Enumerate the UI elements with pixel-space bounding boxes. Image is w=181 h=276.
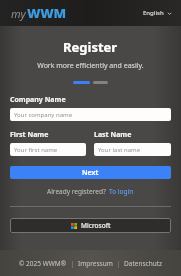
staticText: Your company name — [14, 111, 73, 119]
staticText: my — [11, 6, 26, 21]
staticText: To login — [109, 187, 134, 196]
staticText: Your first name — [14, 146, 58, 154]
button[interactable]: English — [143, 9, 172, 17]
button[interactable]: Impressum — [78, 259, 113, 268]
staticText: Already registered? — [47, 187, 106, 196]
staticText: WWM — [27, 4, 66, 22]
staticText: Company Name — [10, 95, 66, 105]
button[interactable]: Microsoft — [10, 218, 171, 233]
staticText: Register — [63, 38, 118, 56]
button[interactable]: Already registered? — [47, 187, 134, 196]
staticText: First Name — [10, 130, 49, 140]
button[interactable]: Datenschutz — [124, 259, 163, 268]
staticText: Last Name — [94, 130, 132, 140]
button[interactable]: Your last name — [94, 143, 171, 156]
button[interactable]: my — [11, 4, 66, 22]
staticText: English — [143, 9, 164, 17]
button[interactable]: Your company name — [10, 108, 171, 121]
button[interactable]: Your first name — [10, 143, 86, 156]
staticText: Work more efficiently and easily. — [37, 61, 144, 71]
button[interactable]: © 2025 WWM® — [19, 259, 67, 268]
staticText: | — [113, 259, 124, 268]
staticText: Your last name — [98, 146, 141, 154]
other: Microsoft — [71, 223, 77, 229]
button[interactable]: Next — [10, 166, 171, 179]
staticText: | — [67, 259, 78, 268]
staticText: Microsoft — [81, 221, 111, 230]
staticText: Next — [82, 168, 99, 178]
